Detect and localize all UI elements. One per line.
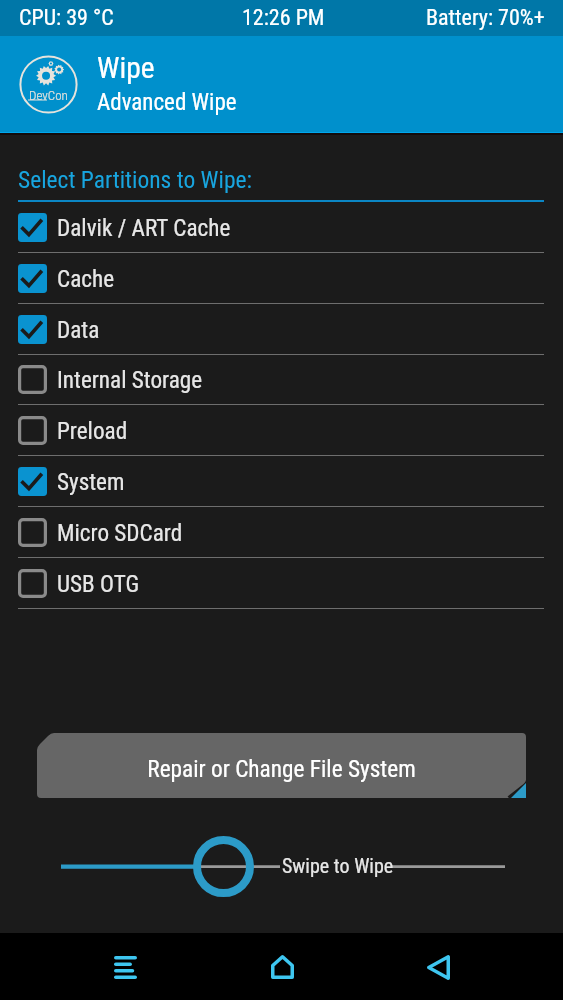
- staticText: Data: [57, 316, 100, 343]
- button[interactable]: Dalvik / ART Cache: [18, 202, 544, 253]
- staticText: Dalvik / ART Cache: [57, 214, 231, 241]
- staticText: Wipe: [97, 51, 155, 86]
- staticText: Select Partitions to Wipe:: [18, 166, 252, 194]
- button[interactable]: Repair or Change File System: [37, 733, 526, 798]
- staticText: USB OTG: [57, 570, 140, 597]
- staticText: Advanced Wipe: [97, 89, 237, 116]
- button[interactable]: Preload: [18, 405, 544, 456]
- button[interactable]: System: [18, 456, 544, 507]
- button[interactable]: USB OTG: [18, 558, 544, 609]
- button[interactable]: Back: [409, 938, 467, 996]
- button[interactable]: Home: [253, 938, 311, 996]
- staticText: Repair or Change File System: [147, 755, 416, 782]
- staticText: 12:26 PM: [242, 5, 325, 31]
- button[interactable]: Micro SDCard: [18, 507, 544, 558]
- staticText: Battery: 70%+: [426, 5, 545, 31]
- button[interactable]: Internal Storage: [18, 354, 544, 405]
- staticText: Cache: [57, 265, 115, 292]
- button[interactable]: Swipe to Wipe: [0, 827, 563, 907]
- staticText: Preload: [57, 417, 128, 444]
- staticText: Internal Storage: [57, 366, 203, 393]
- button[interactable]: Cache: [18, 253, 544, 304]
- staticText: CPU: 39 °C: [19, 5, 114, 31]
- button[interactable]: Recent apps: [96, 938, 154, 996]
- staticText: Micro SDCard: [57, 519, 183, 546]
- staticText: System: [57, 468, 125, 495]
- staticText: DevCon: [29, 88, 68, 103]
- staticText: Swipe to Wipe: [282, 854, 394, 877]
- button[interactable]: Data: [18, 304, 544, 355]
